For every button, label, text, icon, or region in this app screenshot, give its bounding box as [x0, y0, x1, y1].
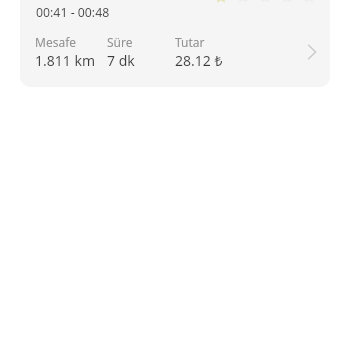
staticText: Süre [107, 34, 133, 50]
staticText: 1.811 km [35, 51, 95, 70]
staticText: Mesafe [35, 34, 77, 50]
staticText: 28.12 ₺ [175, 51, 223, 70]
staticText: 00:41 - 00:48 [36, 4, 110, 21]
button[interactable]: Trip details [302, 42, 322, 62]
staticText: Tutar [175, 34, 205, 50]
button[interactable]: Rating 1 of 5 [214, 0, 316, 4]
button[interactable]: Yolculuk [20, 0, 330, 87]
staticText: 7 dk [107, 51, 135, 70]
